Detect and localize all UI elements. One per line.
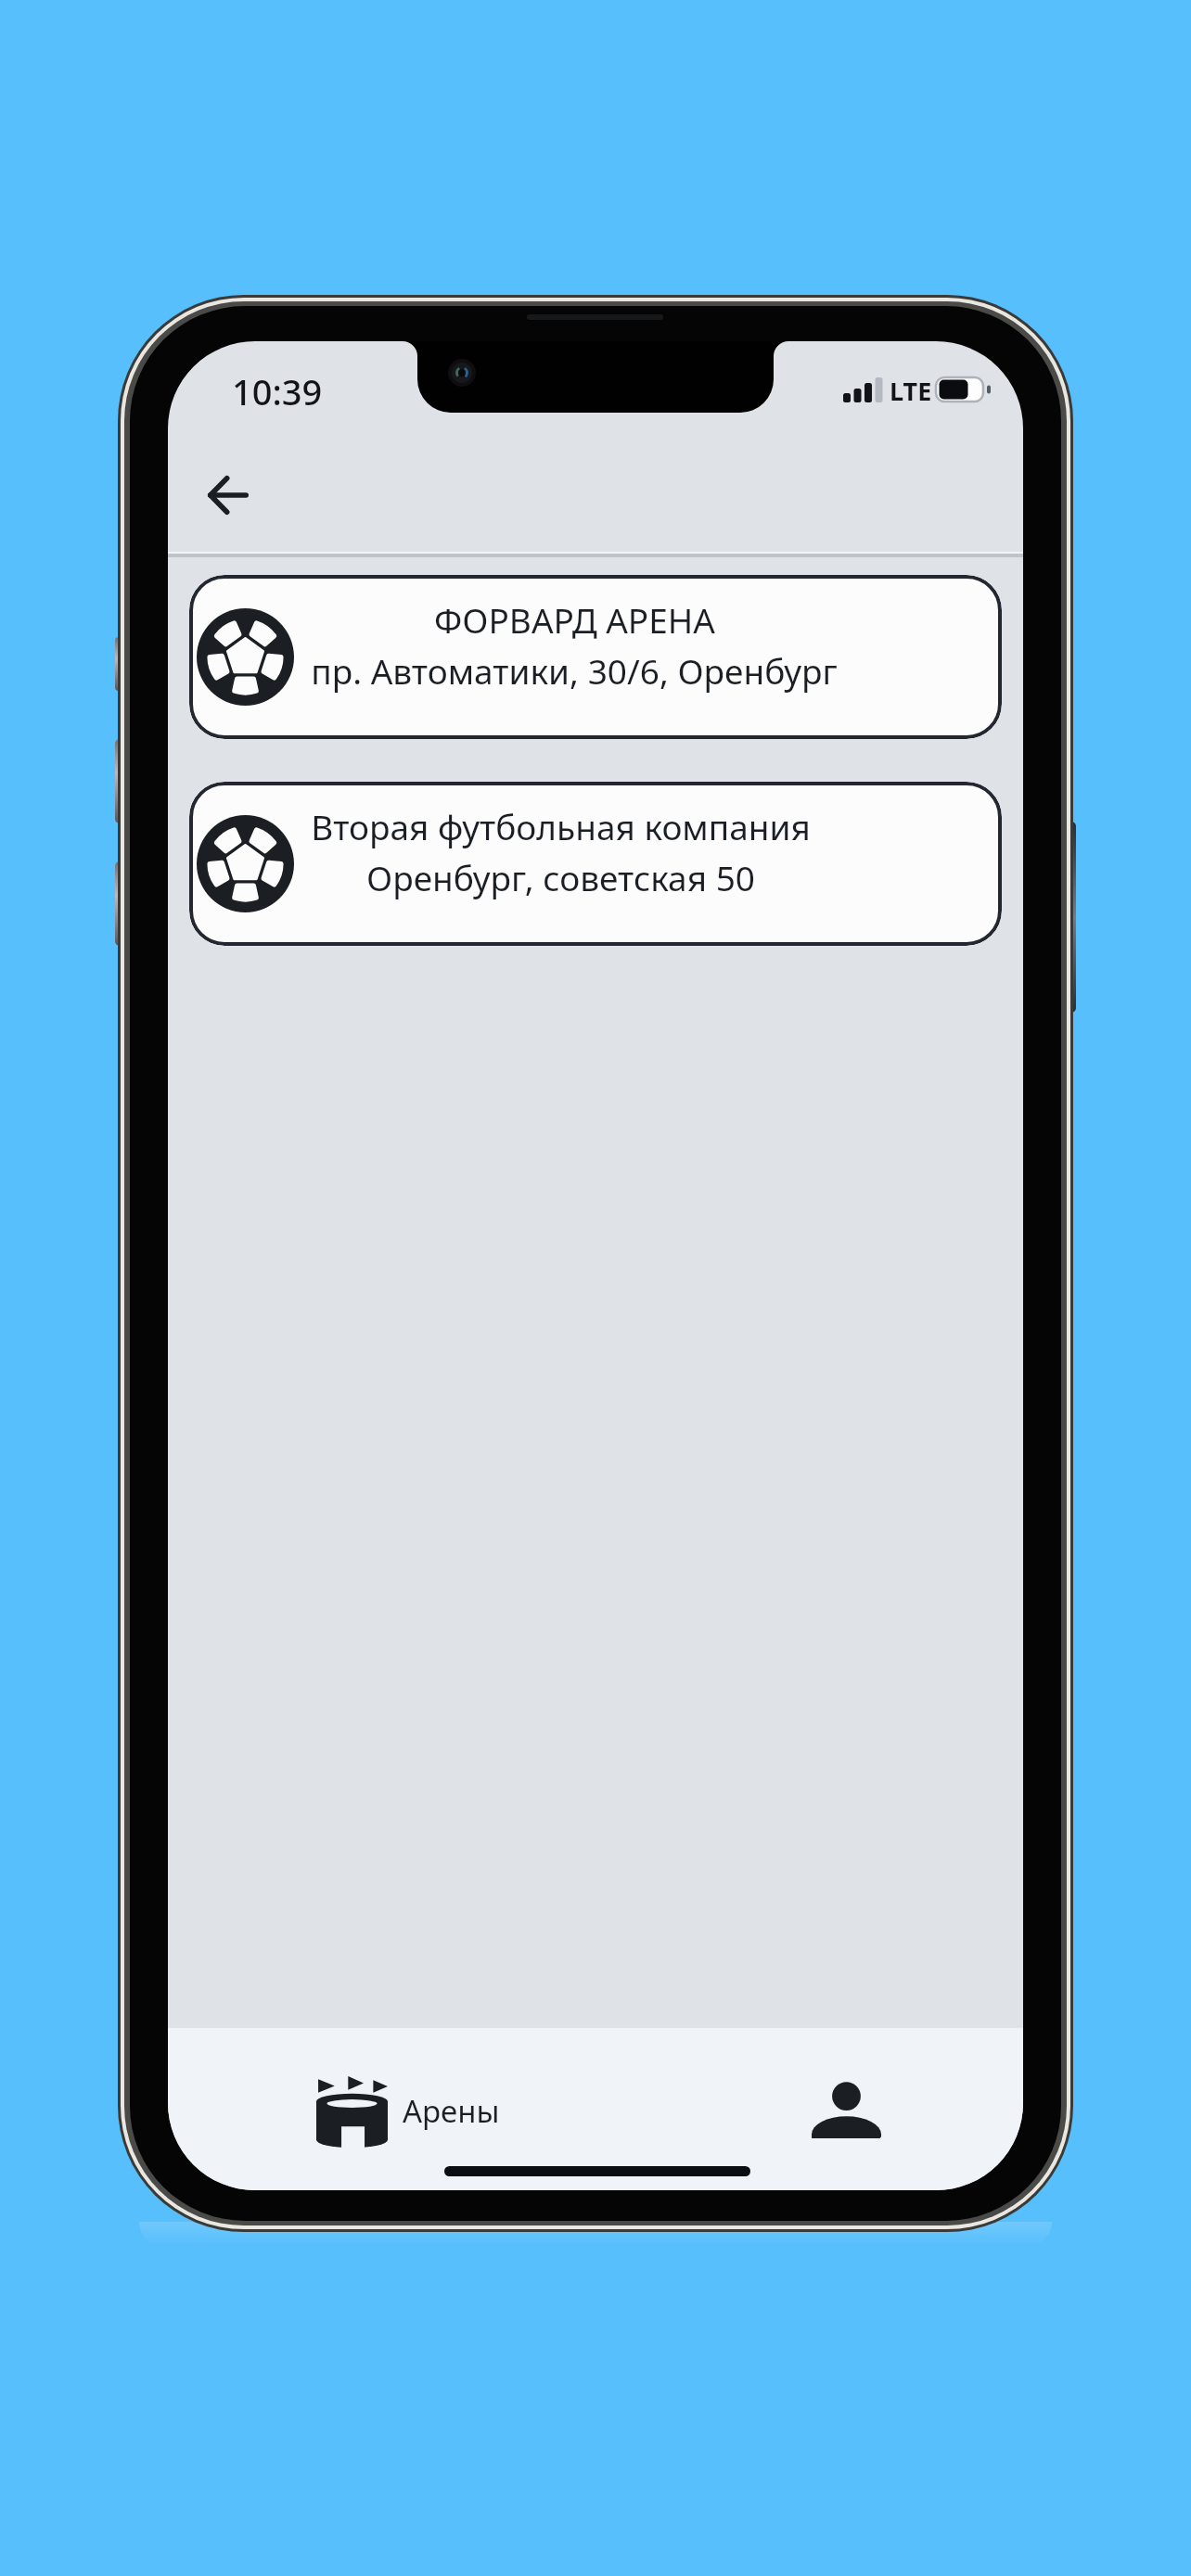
button[interactable]: Profile	[801, 2065, 890, 2154]
button[interactable]: Вторая футбольная компания	[189, 782, 1002, 946]
button[interactable]: ФОРВАРД АРЕНА	[189, 575, 1002, 739]
staticText: пр. Автоматики, 30/6, Оренбург	[311, 647, 838, 694]
staticText: Оренбург, советская 50	[366, 854, 755, 900]
staticText: Арены	[403, 2090, 500, 2132]
button[interactable]: Back	[184, 451, 273, 540]
staticText: 10:39	[232, 367, 323, 415]
staticText: Вторая футбольная компания	[311, 803, 811, 849]
staticText: ФОРВАРД АРЕНА	[434, 596, 715, 643]
staticText: LTE	[890, 374, 932, 408]
button[interactable]: Арены	[307, 2066, 509, 2153]
